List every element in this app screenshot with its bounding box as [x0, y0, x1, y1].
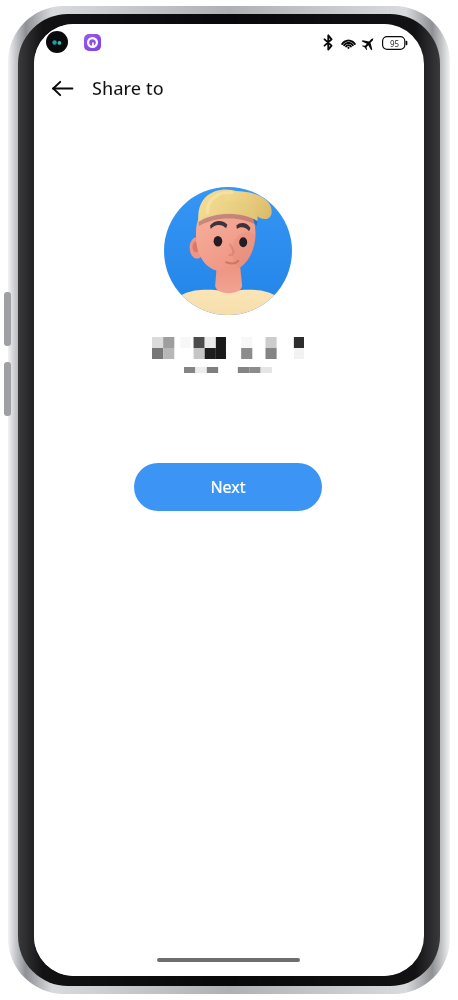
staticText: Next — [210, 476, 246, 498]
staticText: 95 — [390, 38, 400, 49]
button[interactable]: Back — [40, 66, 84, 110]
button[interactable]: Next — [134, 463, 322, 511]
staticText: Share to — [92, 76, 164, 101]
